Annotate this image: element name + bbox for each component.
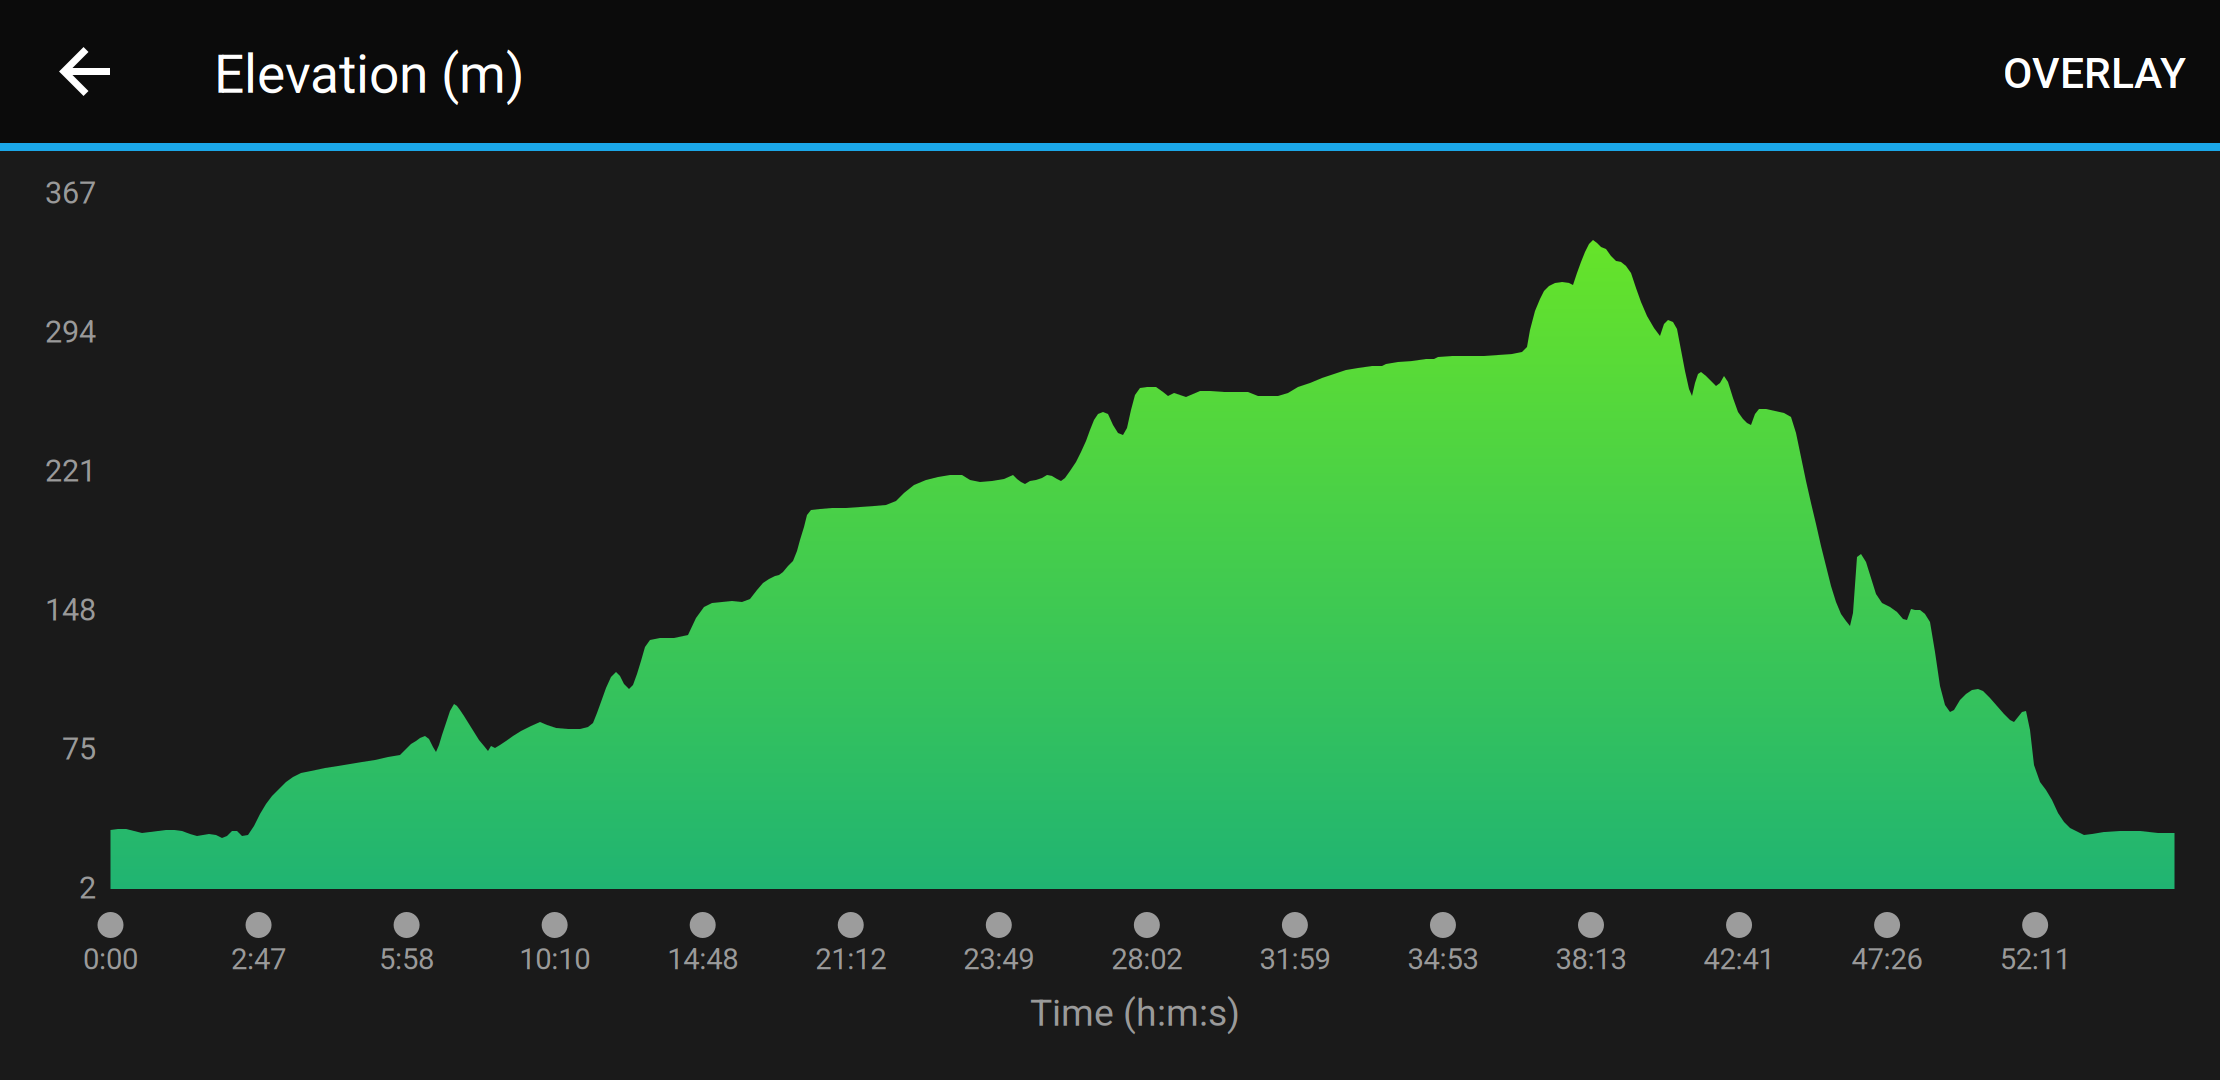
staticText: 294 — [45, 314, 96, 350]
staticText: 31:59 — [1259, 942, 1330, 976]
staticText: 75 — [62, 731, 96, 767]
staticText: 5:58 — [379, 942, 434, 976]
button[interactable]: Back — [33, 0, 141, 143]
staticText: 0:00 — [83, 942, 138, 976]
staticText: 38:13 — [1555, 942, 1626, 976]
staticText: 367 — [45, 175, 96, 211]
staticText: 47:26 — [1852, 942, 1923, 976]
staticText: 221 — [45, 453, 96, 489]
staticText: 21:12 — [815, 942, 886, 976]
staticText: Time (h:m:s) — [1030, 991, 1240, 1035]
staticText: 28:02 — [1111, 942, 1182, 976]
staticText: 23:49 — [963, 942, 1034, 976]
staticText: OVERLAY — [2003, 48, 2186, 98]
staticText: 52:11 — [2000, 942, 2071, 976]
staticText: 14:48 — [667, 942, 738, 976]
staticText: 2:47 — [231, 942, 286, 976]
staticText: 148 — [45, 592, 96, 628]
button[interactable]: OVERLAY — [1926, 2, 2186, 145]
staticText: 42:41 — [1704, 942, 1775, 976]
staticText: Elevation (m) — [214, 43, 525, 106]
staticText: 34:53 — [1407, 942, 1478, 976]
staticText: 2 — [79, 870, 96, 906]
staticText: 10:10 — [519, 942, 590, 976]
